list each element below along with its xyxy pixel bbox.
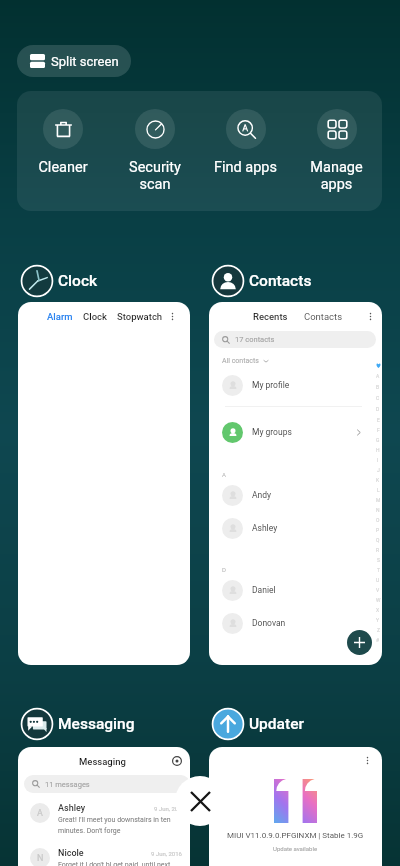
button[interactable]: My groups (209, 420, 382, 444)
staticText: Andy (252, 490, 272, 500)
staticText: Ashley (58, 803, 86, 814)
button[interactable]: MIUI V11.0.9.0.PFGINXM | Stable 1.9G (209, 747, 382, 866)
button[interactable]: Cleaner (17, 91, 109, 176)
staticText: Y (376, 617, 380, 623)
button[interactable]: Messaging (20, 707, 135, 740)
button[interactable]: Manage apps (291, 91, 382, 193)
staticText: 9 Jun, 2016 (151, 850, 182, 857)
button[interactable]: Split screen (17, 45, 131, 77)
staticText: Messaging (58, 715, 135, 733)
staticText: Stopwatch (117, 311, 163, 322)
staticText: Split screen (51, 54, 119, 69)
staticText: U (376, 577, 380, 583)
button[interactable]: Alarm (18, 302, 190, 665)
staticText: Recents (253, 311, 288, 322)
button[interactable]: Contacts (211, 264, 312, 297)
staticText: My profile (252, 380, 290, 390)
staticText: Z (377, 627, 380, 633)
staticText: Contacts (304, 311, 343, 322)
staticText: E (377, 417, 380, 423)
staticText: A (222, 471, 226, 478)
staticText: I (377, 457, 379, 463)
staticText: Nicole (58, 848, 84, 859)
staticText: O (376, 517, 380, 523)
staticText: X (376, 607, 380, 613)
staticText: F (377, 427, 380, 433)
staticText: MIUI V11.0.9.0.PFGINXM | Stable 1.9G (227, 831, 364, 840)
button[interactable]: N (18, 848, 190, 866)
staticText: J (377, 467, 380, 473)
staticText: C (376, 395, 380, 401)
staticText: Donovan (252, 618, 286, 628)
staticText: My groups (252, 427, 292, 437)
staticText: Messaging (79, 756, 126, 767)
button[interactable]: 17 contacts (214, 331, 376, 348)
staticText: 17 contacts (235, 335, 275, 344)
staticText: Cleaner (38, 159, 88, 176)
staticText: Update available (273, 845, 318, 852)
staticText: 9 Jun, 201 (154, 805, 182, 812)
button[interactable]: 11 messages (24, 775, 190, 793)
staticText: Find apps (214, 159, 277, 176)
button[interactable]: A (18, 803, 190, 835)
button[interactable]: Updater (211, 707, 304, 740)
staticText: T (377, 567, 380, 573)
staticText: Great! I'll meet you downstairs in ten m… (58, 816, 171, 835)
staticText: V (376, 587, 380, 593)
button[interactable]: Andy (209, 483, 382, 507)
staticText: M (376, 497, 381, 503)
staticText: Clock (83, 311, 107, 322)
button[interactable]: Messaging (18, 747, 190, 866)
button[interactable]: Add contact (347, 630, 372, 655)
staticText: B (376, 384, 380, 390)
button[interactable]: Security scan (109, 91, 200, 193)
staticText: S (377, 557, 380, 563)
staticText: A (376, 373, 380, 379)
staticText: A (37, 808, 43, 819)
button[interactable]: Donovan (209, 611, 382, 635)
staticText: Contacts (249, 272, 312, 290)
button[interactable]: Find apps (200, 91, 291, 176)
staticText: H (376, 447, 380, 453)
staticText: L (377, 487, 380, 493)
staticText: N (37, 853, 44, 864)
staticText: Q (376, 537, 380, 543)
staticText: G (376, 437, 380, 443)
staticText: P (376, 527, 380, 533)
staticText: N (376, 507, 380, 513)
staticText: D (222, 566, 226, 573)
staticText: Clock (58, 272, 98, 290)
staticText: 11 messages (45, 780, 90, 789)
staticText: Alarm (47, 311, 73, 322)
staticText: # (376, 637, 380, 643)
button[interactable]: Ashley (209, 516, 382, 540)
staticText: R (376, 547, 380, 553)
staticText: W (376, 597, 381, 603)
staticText: D (376, 406, 380, 412)
staticText: K (376, 477, 380, 483)
staticText: Forget it I don't bl get paid until next… (58, 861, 182, 866)
button[interactable]: Daniel (209, 578, 382, 602)
button[interactable]: My profile (209, 373, 382, 397)
staticText: All contacts (222, 357, 259, 365)
button[interactable]: Close all (175, 776, 225, 826)
staticText: Daniel (252, 585, 276, 595)
staticText: Ashley (252, 523, 278, 533)
button[interactable]: Recents (209, 302, 382, 665)
staticText: Security scan (129, 159, 181, 193)
staticText: Manage apps (310, 159, 363, 193)
staticText: Updater (249, 715, 304, 733)
button[interactable]: Clock (20, 264, 98, 297)
